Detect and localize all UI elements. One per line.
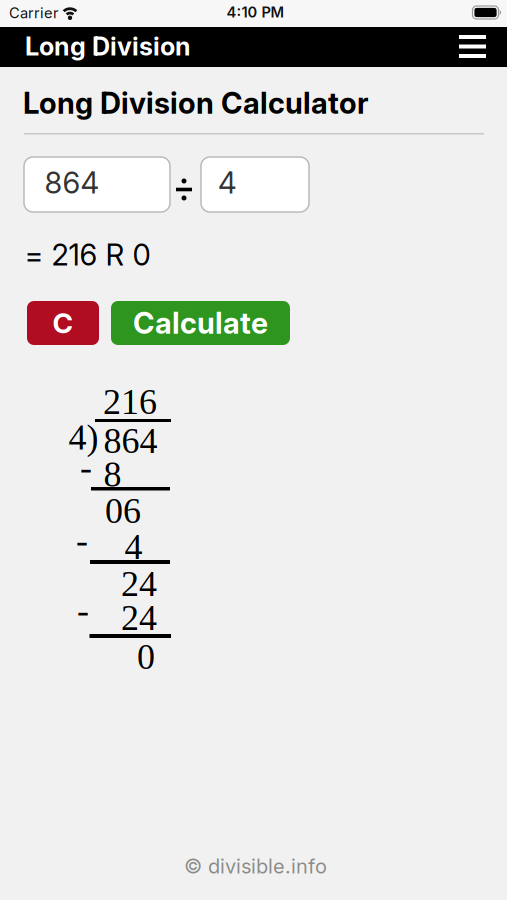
staticText: Long Division: [25, 31, 191, 62]
staticText: 06: [105, 491, 141, 531]
staticText: 24: [121, 564, 157, 604]
staticText: 4: [124, 527, 142, 567]
staticText: 864: [45, 165, 100, 200]
button[interactable]: Calculate: [111, 301, 290, 345]
staticText: -: [77, 590, 89, 630]
button[interactable]: Dividend: [24, 157, 170, 212]
button[interactable]: Menu: [451, 27, 494, 66]
staticText: 4): [69, 417, 99, 457]
staticText: 24: [121, 598, 157, 638]
staticText: 864: [103, 421, 157, 461]
staticText: = 216 R 0: [24, 237, 150, 272]
staticText: © divisible.info: [184, 854, 327, 878]
staticText: C: [52, 306, 73, 340]
staticText: -: [76, 520, 88, 560]
staticText: -: [80, 447, 92, 487]
button[interactable]: Clear: [27, 301, 99, 345]
staticText: 216: [103, 382, 157, 422]
staticText: Long Division Calculator: [23, 85, 369, 121]
staticText: 8: [103, 454, 121, 494]
button[interactable]: © divisible.info: [184, 854, 327, 878]
staticText: Calculate: [133, 305, 268, 341]
staticText: Carrier: [9, 4, 59, 22]
staticText: 4:10 PM: [227, 3, 285, 21]
staticText: 4: [218, 165, 237, 200]
button[interactable]: Divisor: [201, 157, 309, 212]
staticText: 0: [137, 637, 155, 677]
